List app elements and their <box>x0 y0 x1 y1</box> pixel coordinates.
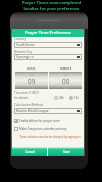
button[interactable]: Muslim World League <box>14 108 82 114</box>
button[interactable]: 59 <box>49 72 82 89</box>
staticText: Times calendar can also be changed by ta… <box>17 135 83 139</box>
staticText: 24h <box>59 96 64 100</box>
staticText: localize for your preference <box>23 6 80 12</box>
staticText: South Korea <box>16 43 35 47</box>
staticText: 01 <box>64 86 68 89</box>
staticText: Prayer Time Preference <box>25 30 71 36</box>
staticText: MINUTE <box>60 67 72 71</box>
button[interactable]: Gyeongju-si <box>14 54 82 60</box>
staticText: 09 <box>28 77 36 86</box>
button[interactable]: Cancel <box>12 147 47 156</box>
button[interactable]: 24h <box>54 96 64 100</box>
staticText: Nearest City <box>14 50 33 54</box>
staticText: Enable Athan for prayer time <box>19 119 60 123</box>
staticText: 12h <box>74 96 79 100</box>
button[interactable]: Make Gregorian calendar primary <box>14 126 82 131</box>
staticText: 10 <box>30 86 34 89</box>
button[interactable]: 08 <box>15 72 48 89</box>
staticText: Calculation Method <box>14 103 44 107</box>
staticText: for details <box>14 96 29 100</box>
button[interactable]: 12h <box>69 96 79 100</box>
staticText: Make Gregorian calendar primary <box>19 127 67 131</box>
button[interactable]: Enable Athan for prayer time <box>14 118 82 123</box>
staticText: Gyeongju-si <box>16 55 34 59</box>
button[interactable]: Save <box>48 147 84 156</box>
staticText: Save <box>63 150 70 154</box>
staticText: 59 <box>64 73 68 77</box>
staticText: Cancel <box>25 150 35 154</box>
staticText: Timezone: 9 (KST) <box>14 91 39 95</box>
button[interactable]: South Korea <box>14 42 82 48</box>
staticText: 00 <box>62 77 70 86</box>
staticText: Muslim World League <box>16 109 49 113</box>
staticText: Prayer Times now completed <box>22 0 81 6</box>
staticText: 08 <box>30 73 34 77</box>
staticText: HOUR <box>27 67 36 71</box>
staticText: Country <box>14 37 26 41</box>
